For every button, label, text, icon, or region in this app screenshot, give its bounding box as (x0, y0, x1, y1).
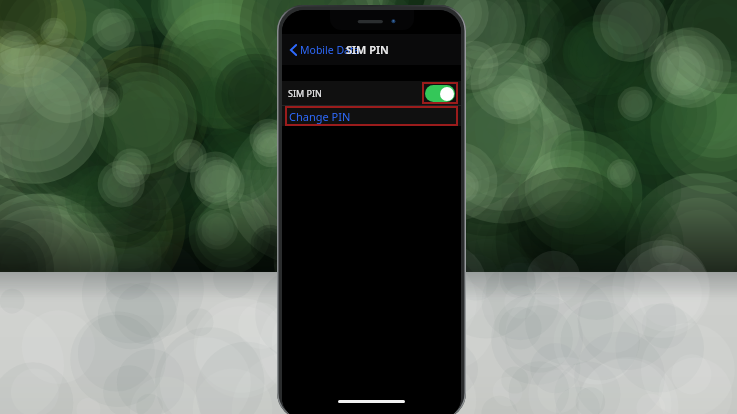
staticText: SIM PIN (288, 87, 322, 99)
button[interactable]: SIM PIN (282, 81, 461, 105)
staticText: Mobile Data (300, 43, 360, 57)
button[interactable]: Change PIN (282, 106, 461, 126)
button[interactable]: SIM PIN toggle, on (422, 82, 458, 104)
button[interactable]: Mobile Data (288, 39, 362, 61)
staticText: Change PIN (289, 109, 351, 124)
staticText: SIM PIN (346, 42, 389, 57)
